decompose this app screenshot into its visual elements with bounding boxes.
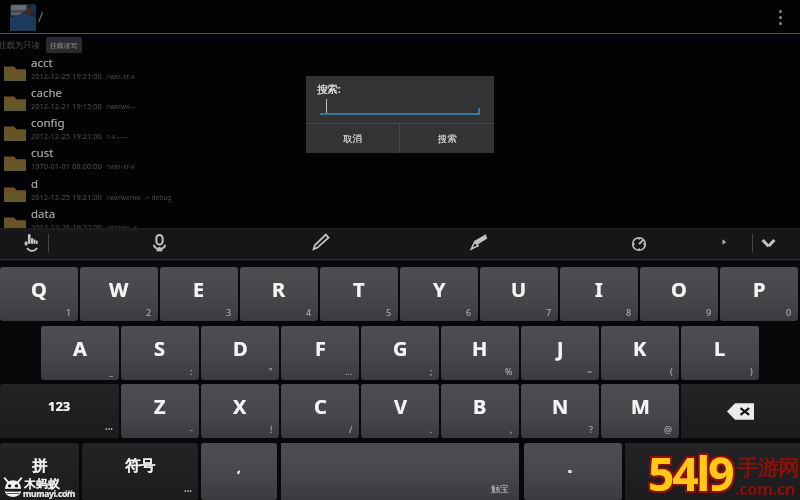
staticText: 54l9: [650, 442, 735, 500]
staticText: 2012-12-25 19:21:00: [31, 192, 102, 202]
staticText: ;: [430, 365, 433, 377]
button[interactable]: E: [160, 267, 238, 321]
button[interactable]: Y: [400, 267, 478, 321]
button[interactable]: I: [560, 267, 638, 321]
staticText: •••: [105, 425, 113, 435]
staticText: P: [753, 276, 766, 303]
staticText: 。: [567, 459, 580, 475]
staticText: 2012-12-25 19:22:00: [31, 222, 102, 232]
button[interactable]: L: [681, 326, 759, 380]
staticText: V: [394, 393, 407, 420]
staticText: Y: [433, 276, 446, 303]
staticText: rwxr-xr-x: [107, 162, 135, 171]
button[interactable]: Space: [281, 443, 519, 500]
staticText: .com.cn: [735, 477, 795, 499]
button[interactable]: C: [281, 384, 359, 438]
staticText: mumayi.com: [23, 488, 75, 500]
staticText: F: [315, 335, 326, 362]
staticText: •••: [65, 487, 73, 497]
button[interactable]: H: [441, 326, 519, 380]
staticText: 搜索: [438, 133, 457, 145]
button[interactable]: Backspace: [681, 384, 800, 438]
button[interactable]: cust: [0, 144, 800, 174]
staticText: 54l9: [647, 443, 732, 500]
staticText: rwxr-xr-x: [107, 72, 135, 81]
button[interactable]: Pen input: [311, 232, 330, 251]
staticText: ~: [587, 365, 593, 377]
button[interactable]: P: [720, 267, 798, 321]
staticText: 0: [786, 306, 792, 318]
button[interactable]: 。: [524, 443, 622, 500]
staticText: 54l9: [649, 443, 734, 500]
button[interactable]: K: [601, 326, 679, 380]
staticText: 54l9: [646, 442, 731, 500]
staticText: 54l9: [646, 443, 731, 500]
button[interactable]: config: [0, 114, 800, 144]
staticText: 54l9: [650, 443, 735, 500]
staticText: 6: [466, 306, 472, 318]
staticText: _: [109, 365, 113, 377]
button[interactable]: D: [201, 326, 279, 380]
staticText: 54l9: [650, 444, 735, 500]
button[interactable]: X: [201, 384, 279, 438]
button[interactable]: More options: [771, 6, 789, 28]
button[interactable]: 123: [0, 384, 119, 438]
staticText: .: [430, 423, 433, 435]
staticText: 54l9: [650, 440, 735, 500]
staticText: 挂载为只读: [0, 40, 40, 51]
button[interactable]: 搜索: [400, 124, 494, 153]
staticText: D: [233, 335, 248, 362]
staticText: 触宝: [491, 483, 509, 494]
button[interactable]: 取消: [306, 124, 399, 153]
button[interactable]: M: [601, 384, 679, 438]
staticText: 拼: [32, 457, 47, 476]
staticText: 8: [626, 306, 632, 318]
staticText: 1: [66, 306, 72, 318]
button[interactable]: N: [521, 384, 599, 438]
button[interactable]: File manager: [10, 4, 36, 31]
button[interactable]: Handwriting input: [24, 232, 38, 252]
button[interactable]: ,: [201, 443, 277, 500]
button[interactable]: Hide keyboard: [758, 232, 779, 253]
button[interactable]: acct: [0, 54, 800, 84]
button[interactable]: T: [320, 267, 398, 321]
button[interactable]: U: [480, 267, 558, 321]
staticText: G: [393, 335, 408, 362]
button[interactable]: 符号: [82, 443, 198, 500]
staticText: 54l9: [647, 441, 732, 500]
staticText: X: [233, 393, 247, 420]
button[interactable]: B: [441, 384, 519, 438]
staticText: config: [31, 115, 65, 131]
button[interactable]: 挂载读写: [46, 37, 82, 53]
staticText: rwxrwx---: [107, 102, 136, 111]
staticText: 54l9: [648, 444, 733, 500]
staticText: ,: [237, 458, 241, 476]
button[interactable]: Enter: [625, 443, 800, 500]
button[interactable]: G: [361, 326, 439, 380]
button[interactable]: V: [361, 384, 439, 438]
button[interactable]: Recent: [632, 237, 646, 251]
staticText: 9: [706, 306, 712, 318]
button[interactable]: data: [0, 205, 800, 235]
staticText: 54l9: [649, 444, 734, 500]
button[interactable]: J: [521, 326, 599, 380]
button[interactable]: W: [80, 267, 158, 321]
button[interactable]: Z: [121, 384, 199, 438]
button[interactable]: Marker: [469, 232, 488, 251]
staticText: /: [349, 423, 353, 435]
button[interactable]: S: [121, 326, 199, 380]
button[interactable]: d: [0, 175, 800, 205]
button[interactable]: Q: [0, 267, 78, 321]
button[interactable]: 拼: [0, 443, 79, 500]
button[interactable]: R: [240, 267, 318, 321]
staticText: 取消: [343, 133, 362, 145]
button[interactable]: F: [281, 326, 359, 380]
button[interactable]: Voice input: [152, 234, 167, 251]
staticText: rwxrwx--x: [107, 223, 138, 232]
button[interactable]: cache: [0, 84, 800, 114]
staticText: 54l9: [649, 440, 734, 500]
button[interactable]: More input options: [718, 236, 730, 248]
button[interactable]: A: [41, 326, 119, 380]
button[interactable]: O: [640, 267, 718, 321]
staticText: T: [353, 276, 365, 303]
